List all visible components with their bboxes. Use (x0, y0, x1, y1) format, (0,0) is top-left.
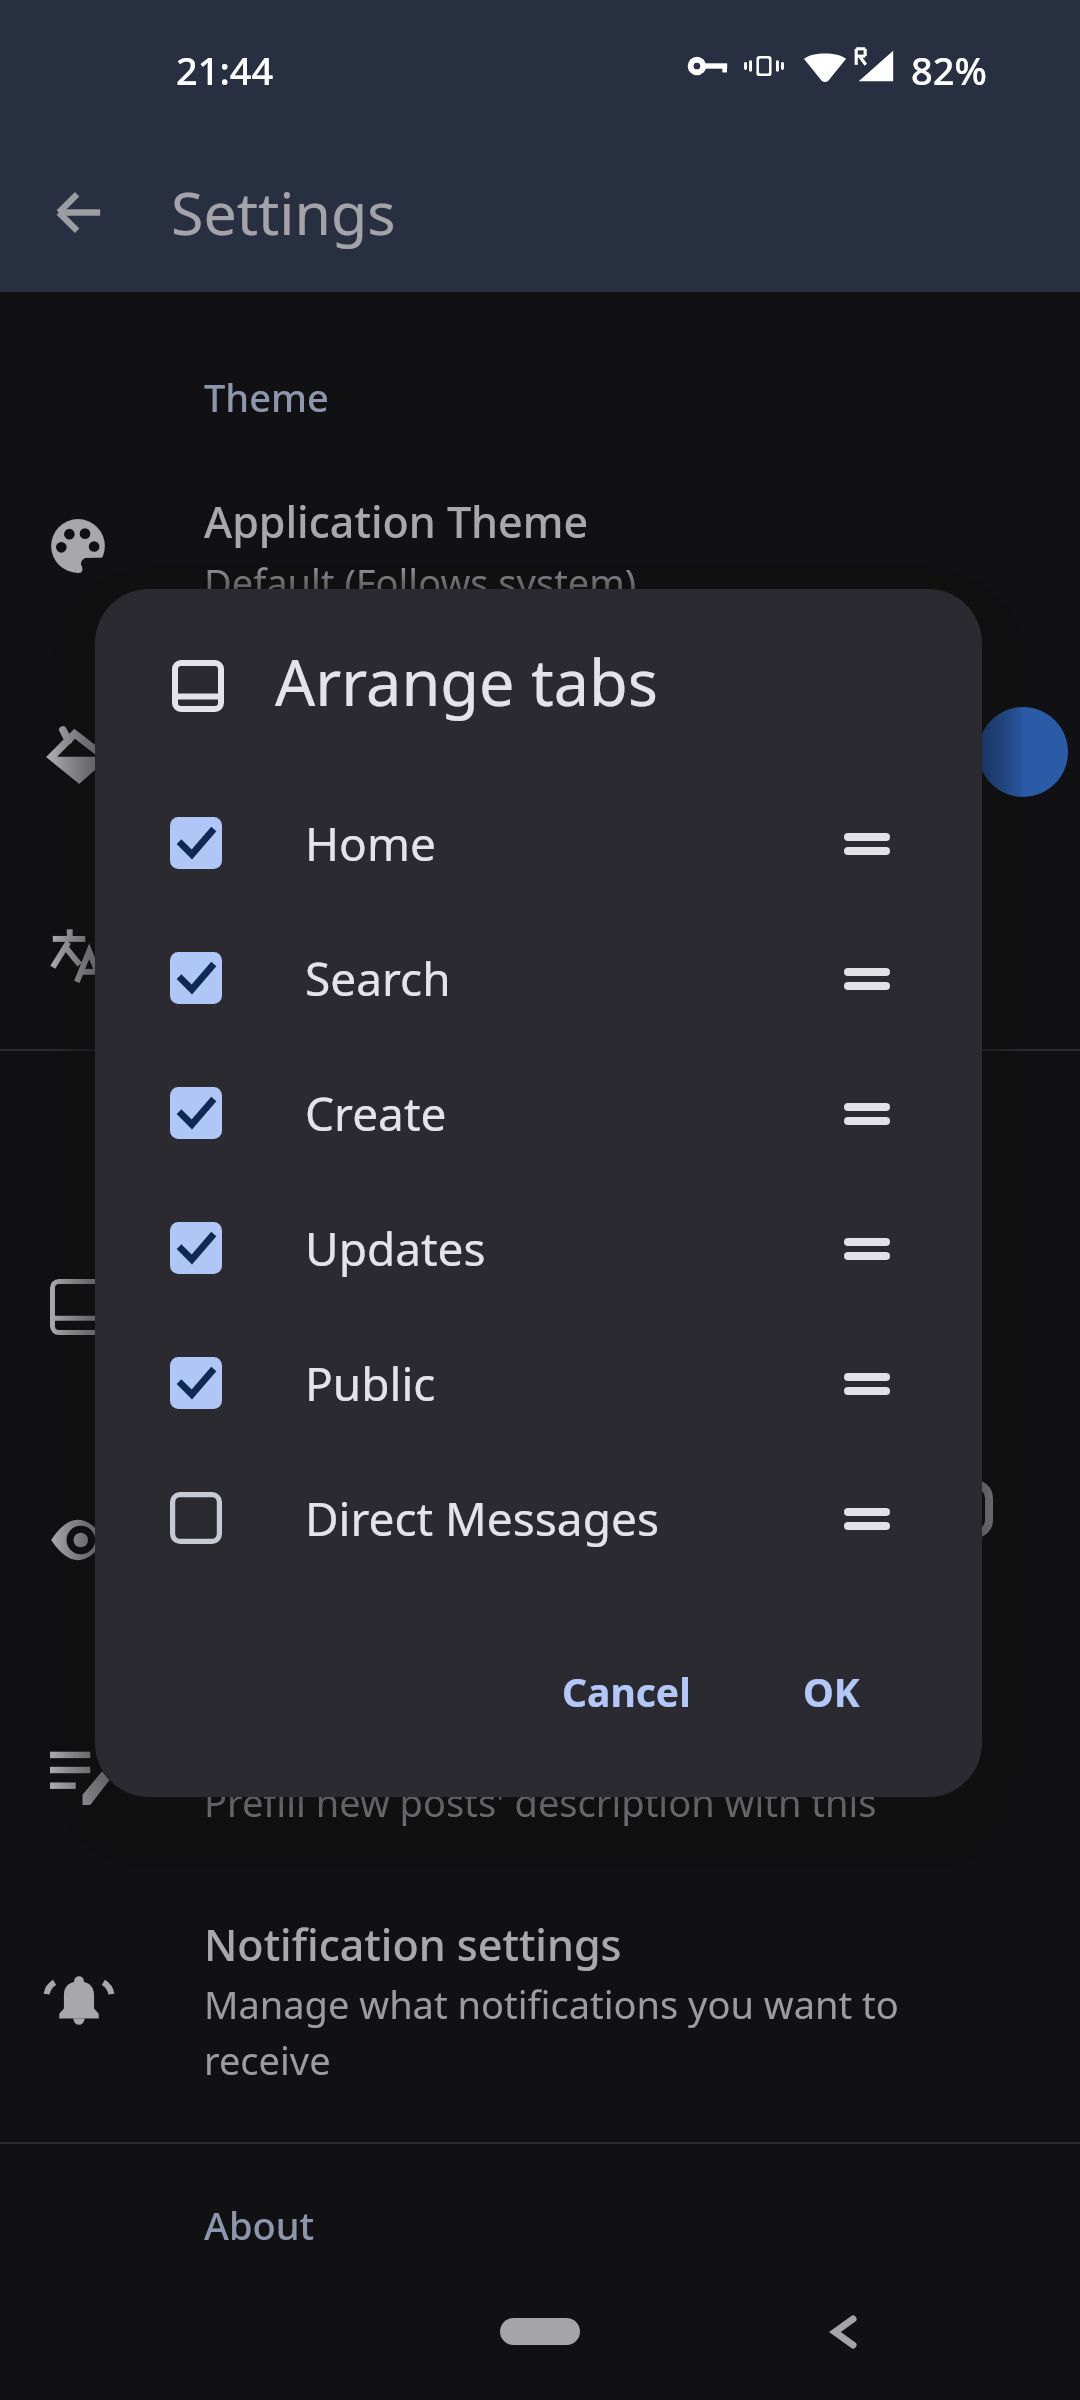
staticText: Hide sensitive media (204, 1481, 631, 1540)
button[interactable]: Prefill new posts (0, 1684, 1080, 1852)
button[interactable]: Notification settings (0, 1887, 1080, 2113)
button[interactable]: Back (818, 2306, 870, 2358)
staticText: OK (803, 1665, 860, 1718)
staticText: System default (204, 963, 470, 1015)
staticText: Arrange tabs (204, 1248, 471, 1307)
staticText: Manage what notifications you want to re… (204, 1978, 899, 2086)
button[interactable]: Reorder Public (837, 1354, 897, 1414)
staticText: Updates (305, 1217, 486, 1280)
button[interactable]: Create (95, 1046, 982, 1180)
button[interactable]: Language (0, 871, 1080, 1039)
staticText: Settings (171, 172, 396, 252)
button[interactable]: Cancel (538, 1651, 715, 1732)
staticText: About (204, 2199, 315, 2251)
staticText: Application Theme (204, 492, 589, 551)
staticText: Theme (204, 371, 329, 423)
button[interactable]: Reorder Search (837, 949, 897, 1009)
button[interactable]: Application Theme (0, 464, 1080, 632)
staticText: Arrange tabs (275, 639, 658, 725)
staticText: Cancel (562, 1665, 691, 1718)
staticText: Theme colour (204, 696, 487, 755)
button[interactable]: Search (95, 911, 982, 1045)
button[interactable]: Home (500, 2318, 580, 2345)
button[interactable]: Home (95, 776, 982, 910)
button[interactable]: Reorder Create (837, 1084, 897, 1144)
staticText: Choose what tabs to show (204, 1312, 673, 1364)
staticText: 82% (911, 44, 987, 96)
staticText: Language (204, 899, 409, 958)
staticText: 21:44 (176, 44, 274, 96)
button[interactable]: Updates (95, 1181, 982, 1315)
button[interactable]: Reorder Home (837, 814, 897, 874)
staticText: Prefill new posts' description with this (204, 1776, 877, 1828)
staticText: Direct Messages (305, 1487, 659, 1550)
staticText: Create (305, 1082, 447, 1145)
button[interactable]: Theme colour (0, 668, 1080, 836)
button[interactable]: Back (31, 164, 127, 260)
staticText: Search (305, 947, 451, 1010)
button[interactable]: Reorder Direct Messages (837, 1489, 897, 1549)
staticText: Home (305, 812, 436, 875)
button[interactable]: Hide sensitive media (0, 1453, 1080, 1621)
button[interactable]: Direct Messages (95, 1451, 982, 1585)
button[interactable]: Reorder Updates (837, 1219, 897, 1279)
staticText: Notification settings (204, 1915, 622, 1974)
button[interactable]: Public (95, 1316, 982, 1450)
staticText: Public (305, 1352, 436, 1415)
button[interactable]: Add (978, 707, 1068, 797)
button[interactable]: OK (779, 1651, 884, 1732)
staticText: Default (Follows system) (204, 556, 637, 608)
button[interactable]: Arrange tabs (0, 1220, 1080, 1388)
